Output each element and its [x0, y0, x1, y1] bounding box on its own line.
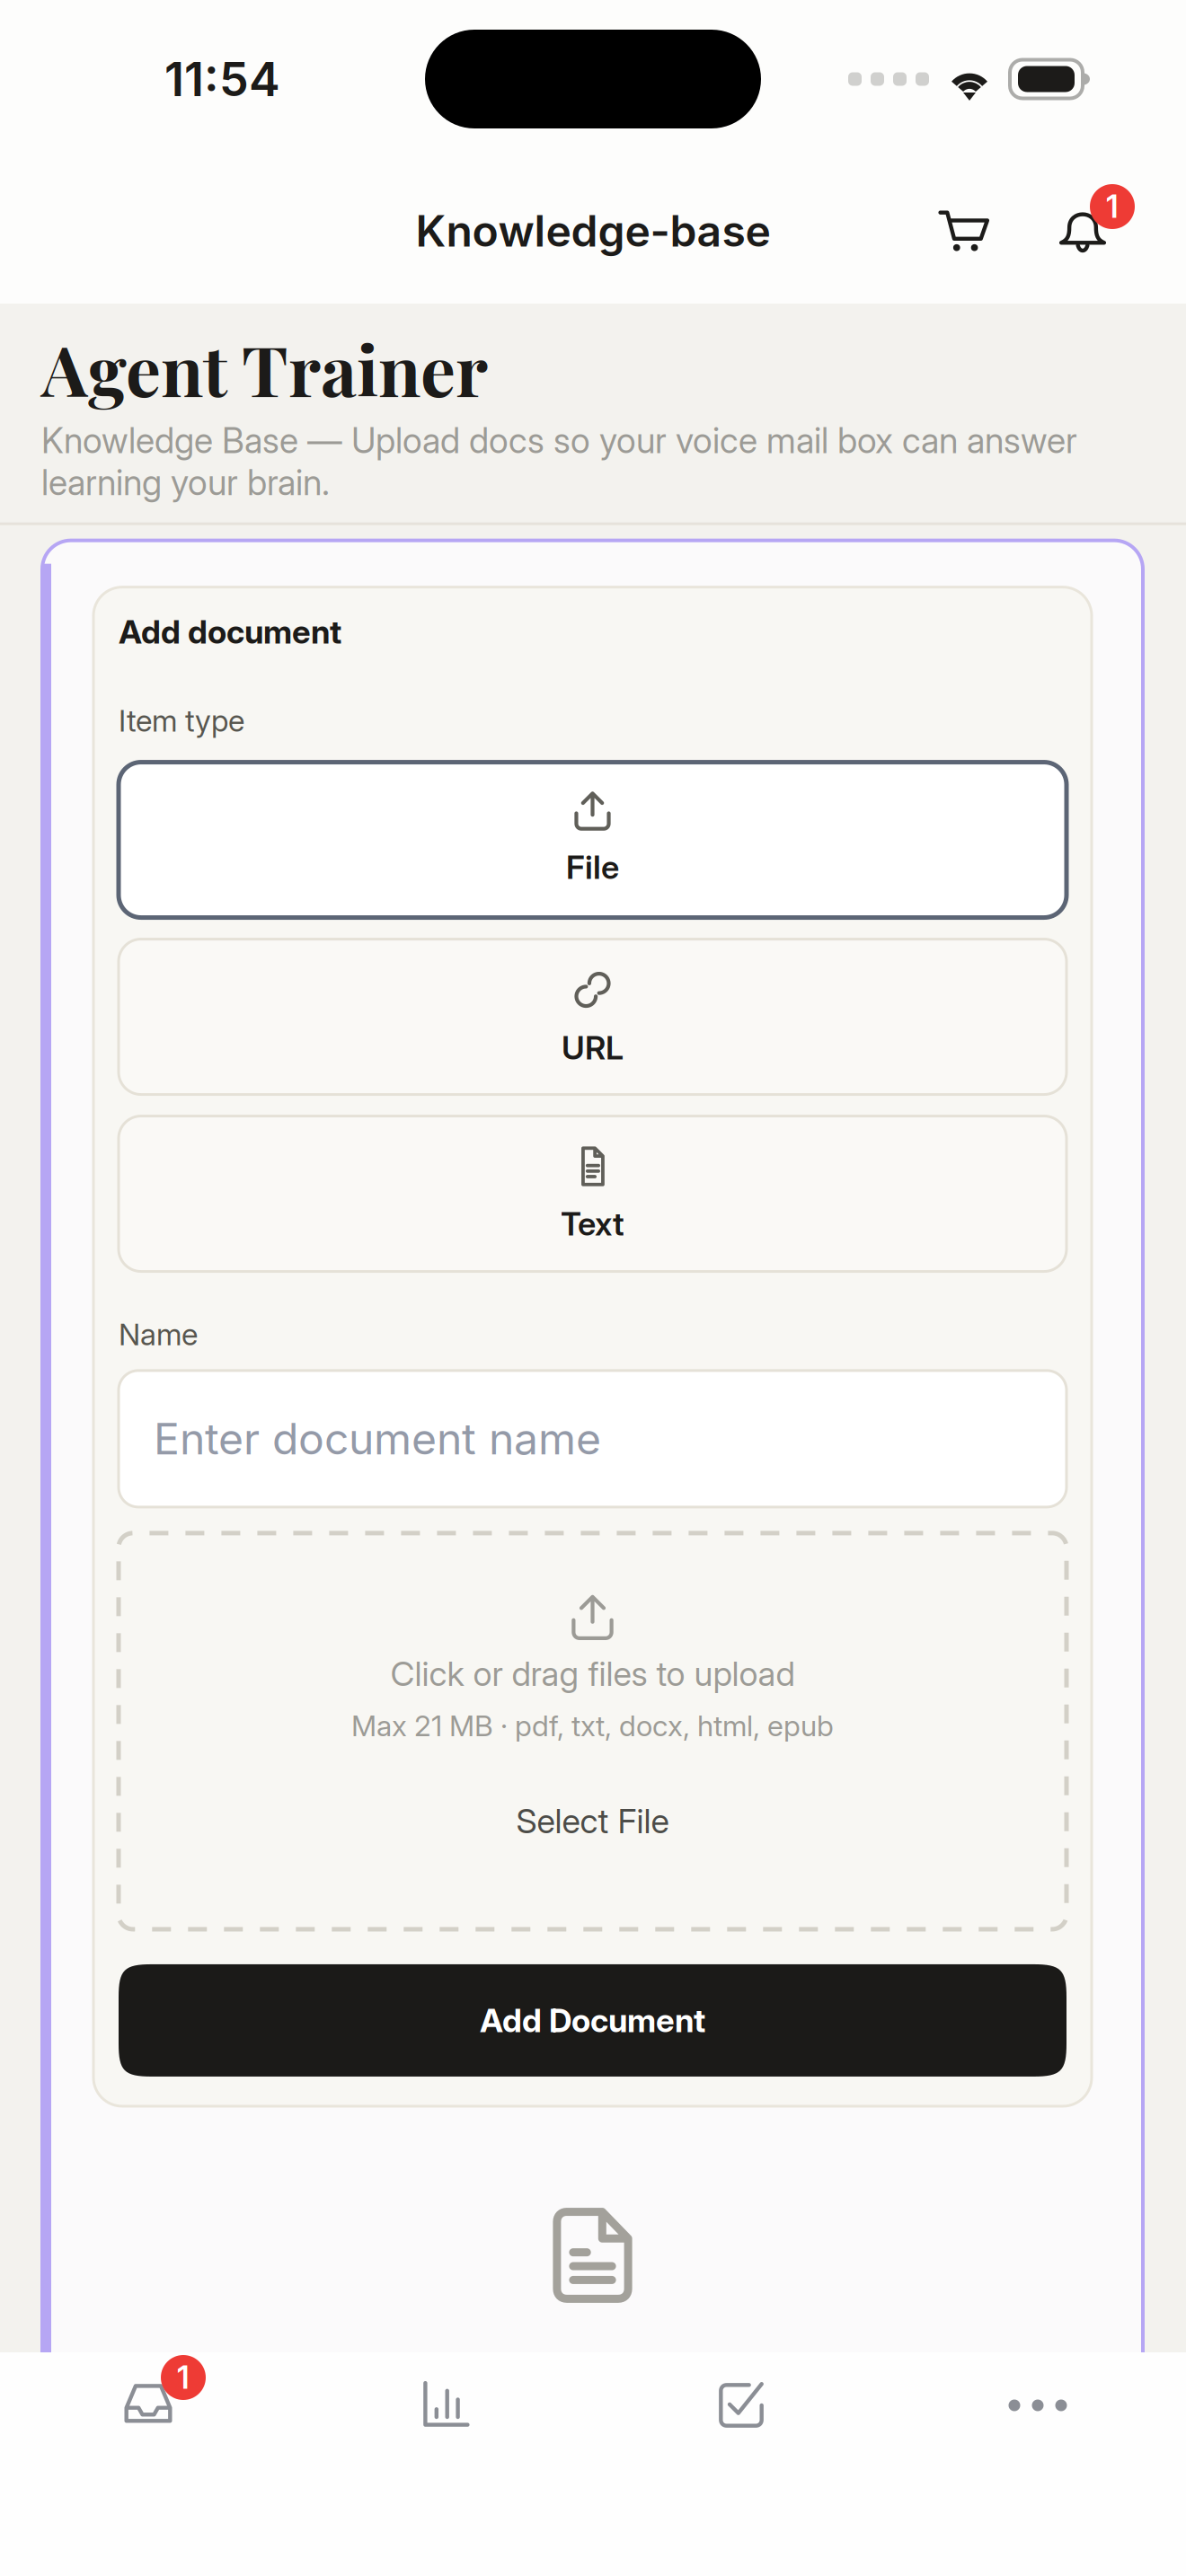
staticText: 1 — [1106, 188, 1119, 225]
button[interactable]: Text — [119, 1116, 1067, 1271]
staticText: Select File — [516, 1801, 669, 1841]
button[interactable]: Cart — [919, 186, 1009, 276]
button[interactable]: Tasks — [688, 2352, 794, 2458]
staticText: Max 21 MB · pdf, txt, docx, html, epub — [351, 1708, 834, 1743]
button[interactable]: More — [985, 2352, 1091, 2458]
button[interactable]: Inbox, 1 unread — [87, 2352, 209, 2458]
staticText: 1 — [177, 2359, 190, 2396]
staticText: Click or drag files to upload — [390, 1653, 795, 1694]
staticText: Knowledge Base — Upload docs so your voi… — [41, 420, 1077, 504]
staticText: 11:54 — [164, 51, 280, 107]
button[interactable]: Add Document — [119, 1964, 1067, 2077]
staticText: Enter document name — [154, 1413, 601, 1465]
staticText: Add Document — [480, 2001, 705, 2040]
staticText: Name — [119, 1316, 198, 1352]
staticText: Text — [561, 1204, 624, 1243]
button[interactable]: File — [119, 762, 1067, 917]
button[interactable]: Select File — [493, 1785, 692, 1857]
button[interactable]: URL — [119, 939, 1067, 1094]
staticText: File — [566, 847, 619, 887]
button[interactable]: Notifications, 1 new — [1038, 186, 1128, 276]
staticText: URL — [562, 1028, 624, 1067]
staticText: Knowledge-base — [416, 205, 770, 257]
staticText: Agent Trainer — [41, 322, 488, 414]
staticText: Add document — [119, 612, 341, 651]
staticText: Item type — [119, 703, 244, 739]
button[interactable]: Stats — [392, 2352, 498, 2458]
